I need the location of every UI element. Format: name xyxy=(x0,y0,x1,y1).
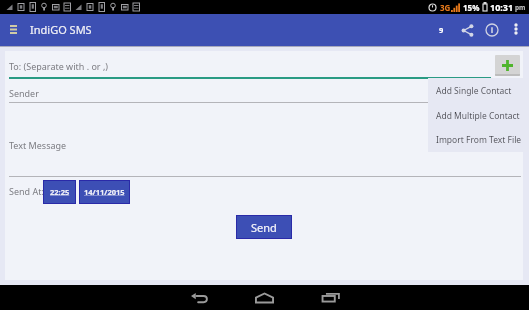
button[interactable]: Share xyxy=(456,19,478,41)
staticText: Send xyxy=(251,220,277,235)
staticText: Text Message xyxy=(9,139,67,151)
staticText: Import From Text File xyxy=(436,134,522,146)
button[interactable]: Navigation menu xyxy=(3,19,23,39)
button[interactable]: Back xyxy=(179,285,219,310)
button[interactable]: Info xyxy=(481,19,503,41)
staticText: Add Single Contact xyxy=(436,85,512,97)
button[interactable]: Home xyxy=(244,285,284,310)
staticText: 14/11/2015 xyxy=(84,187,125,197)
button[interactable]: Import From Text File xyxy=(428,128,529,152)
button[interactable]: Add Single Contact xyxy=(428,78,529,103)
button[interactable]: 14/11/2015 xyxy=(80,181,129,203)
button[interactable]: Recent apps xyxy=(311,285,351,310)
staticText: IndiGO SMS xyxy=(30,22,92,37)
staticText: Sender xyxy=(9,87,39,99)
staticText: 3G xyxy=(440,2,451,13)
button[interactable]: Add Multiple Contact xyxy=(428,103,529,128)
button[interactable]: Add contact xyxy=(495,55,520,76)
staticText: 15% xyxy=(463,2,480,13)
staticText: 9 xyxy=(439,25,444,35)
staticText: Send At: xyxy=(9,185,44,197)
button[interactable]: 22:25 xyxy=(44,181,75,203)
button[interactable]: More options xyxy=(506,19,526,39)
staticText: Add Multiple Contact xyxy=(436,110,520,122)
button[interactable]: Send xyxy=(237,216,291,238)
staticText: 10:31 xyxy=(490,1,514,13)
staticText: To: (Separate with . or ,) xyxy=(9,60,109,72)
staticText: 22:25 xyxy=(50,187,70,197)
staticText: pm xyxy=(515,3,526,12)
